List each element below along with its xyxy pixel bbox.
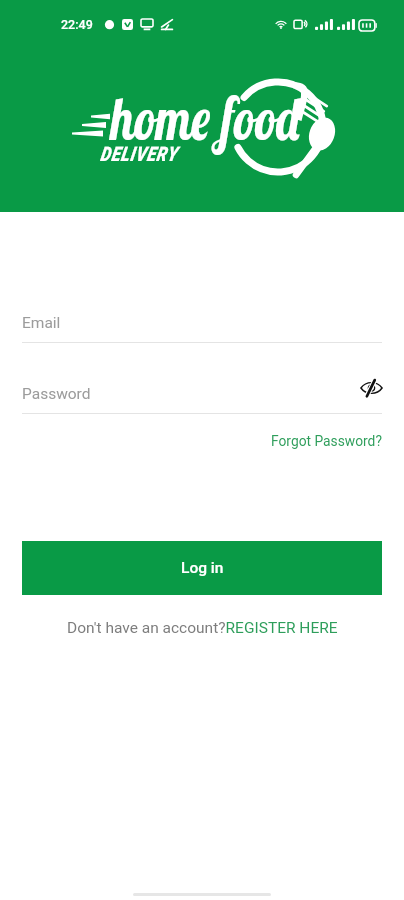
staticText: Password bbox=[22, 385, 91, 403]
button[interactable]: Don't have an account?REGISTER HERE bbox=[67, 619, 338, 637]
staticText: DELIVERY bbox=[100, 142, 178, 165]
staticText: Email bbox=[22, 314, 61, 332]
staticText: home food bbox=[110, 80, 302, 155]
button[interactable]: Forgot Password? bbox=[271, 433, 382, 449]
staticText: 22:49 bbox=[61, 17, 93, 32]
button[interactable]: Show password bbox=[360, 379, 383, 397]
staticText: Log in bbox=[181, 559, 224, 577]
button[interactable]: Log in bbox=[22, 541, 382, 595]
